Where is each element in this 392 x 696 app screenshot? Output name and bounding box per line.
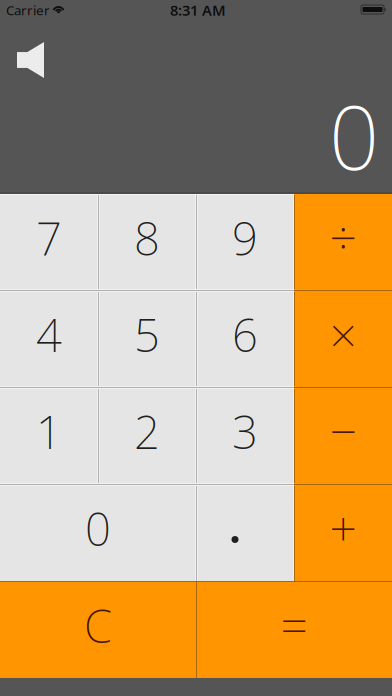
staticText: 4 — [36, 304, 62, 365]
staticText: C — [84, 595, 112, 656]
staticText: 8:31 AM — [170, 0, 226, 20]
staticText: 2 — [134, 401, 160, 462]
button[interactable]: 4 — [0, 290, 98, 387]
button[interactable]: 3 — [196, 387, 294, 484]
staticText: = — [280, 593, 307, 656]
button[interactable]: C — [0, 581, 196, 678]
button[interactable]: ÷ — [294, 194, 392, 290]
staticText: Carrier — [6, 1, 50, 19]
staticText: × — [329, 303, 356, 366]
staticText: + — [329, 496, 356, 559]
staticText: 7 — [36, 208, 62, 268]
button[interactable]: = — [196, 581, 392, 678]
staticText: 5 — [134, 304, 160, 365]
button[interactable]: 2 — [98, 387, 196, 484]
button[interactable]: 1 — [0, 387, 98, 484]
button[interactable]: Mute — [0, 0, 44, 78]
button[interactable]: × — [294, 290, 392, 387]
staticText: ÷ — [329, 205, 356, 269]
button[interactable] — [196, 484, 294, 581]
button[interactable]: − — [294, 387, 392, 484]
staticText: 9 — [232, 208, 258, 268]
button[interactable]: + — [294, 484, 392, 581]
staticText: − — [329, 399, 356, 462]
staticText: 0 — [85, 498, 111, 559]
button[interactable]: 8 — [98, 194, 196, 290]
staticText: 8 — [134, 208, 160, 268]
staticText: 6 — [232, 304, 258, 365]
button[interactable]: 5 — [98, 290, 196, 387]
staticText: 0 — [329, 77, 379, 194]
button[interactable]: 6 — [196, 290, 294, 387]
staticText: 3 — [232, 401, 258, 462]
button[interactable]: 7 — [0, 194, 98, 290]
button[interactable]: 0 — [0, 484, 196, 581]
button[interactable]: 9 — [196, 194, 294, 290]
staticText: 1 — [36, 401, 62, 462]
